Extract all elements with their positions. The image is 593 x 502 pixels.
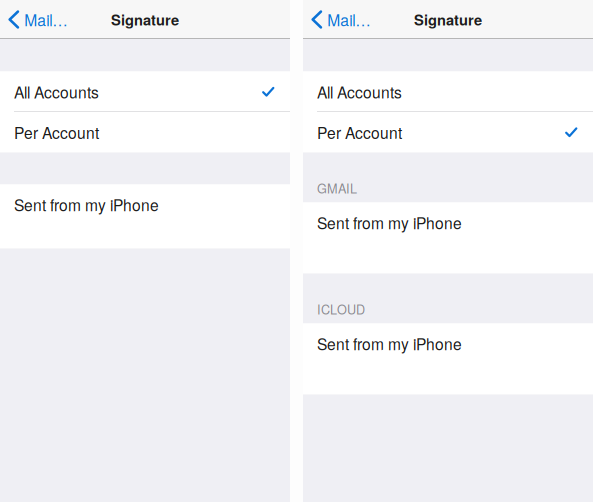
button[interactable]: Sent from my iPhone bbox=[303, 323, 593, 394]
staticText: All Accounts bbox=[14, 81, 99, 103]
staticText: Mail… bbox=[327, 8, 371, 31]
staticText: Sent from my iPhone bbox=[317, 332, 462, 355]
staticText: All Accounts bbox=[317, 81, 402, 103]
staticText: Per Account bbox=[317, 121, 402, 143]
button[interactable]: Sent from my iPhone bbox=[303, 202, 593, 273]
button[interactable]: Per Account bbox=[303, 112, 593, 152]
staticText: Signature bbox=[111, 9, 179, 30]
staticText: Mail… bbox=[24, 8, 68, 31]
staticText: Sent from my iPhone bbox=[317, 211, 462, 234]
button[interactable]: All Accounts bbox=[0, 71, 290, 112]
staticText: Sent from my iPhone bbox=[14, 193, 159, 216]
staticText: Per Account bbox=[14, 121, 99, 143]
button[interactable]: Sent from my iPhone bbox=[0, 184, 290, 248]
button[interactable]: All Accounts bbox=[303, 71, 593, 112]
button[interactable]: Mail… bbox=[0, 0, 76, 40]
staticText: ICLOUD bbox=[317, 300, 365, 318]
staticText: GMAIL bbox=[317, 179, 357, 197]
button[interactable]: Mail… bbox=[303, 0, 379, 40]
staticText: Signature bbox=[414, 9, 482, 30]
button[interactable]: Per Account bbox=[0, 112, 290, 152]
